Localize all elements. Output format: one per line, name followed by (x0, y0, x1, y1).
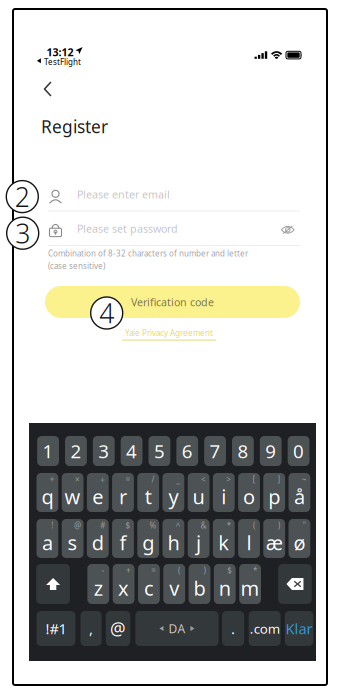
button[interactable]: 1 (37, 436, 59, 466)
staticText: 5 (154, 439, 165, 463)
button[interactable]: = (138, 564, 160, 604)
button[interactable]: / (137, 473, 159, 512)
button[interactable]: * (213, 519, 235, 558)
button[interactable]: & (188, 519, 209, 558)
staticText: ] (278, 474, 281, 485)
button[interactable]: 6 (176, 436, 198, 466)
button[interactable]: + (113, 564, 134, 604)
staticText: m (241, 575, 260, 601)
staticText: 3 (98, 439, 109, 463)
staticText: v (169, 575, 179, 601)
button[interactable]: ( (163, 564, 185, 604)
button[interactable]: 7 (204, 436, 226, 466)
button[interactable]: % (137, 519, 159, 558)
staticText: " (303, 520, 306, 531)
button[interactable]: Klar (285, 611, 313, 646)
button[interactable]: ^ (162, 519, 184, 558)
button[interactable]: × (62, 473, 83, 512)
button[interactable]: ) (189, 564, 210, 604)
button[interactable]: + (36, 473, 58, 512)
button[interactable]: [ (238, 473, 260, 512)
button[interactable]: Yale Privacy Agreement (113, 327, 225, 341)
button[interactable]: @ (106, 611, 130, 646)
staticText: 13:12 (46, 45, 73, 59)
staticText: o (243, 483, 255, 510)
staticText: x (118, 575, 129, 601)
staticText: # (100, 520, 105, 531)
button[interactable]: # (87, 519, 109, 558)
staticText: + (126, 565, 131, 576)
staticText: u (193, 483, 205, 510)
staticText: .com (250, 620, 280, 637)
staticText: s (68, 529, 78, 556)
staticText: ^ (176, 520, 181, 531)
button[interactable]: 4 (121, 436, 142, 466)
button[interactable]: Shift (36, 564, 70, 604)
button[interactable]: 3 (93, 436, 115, 466)
staticText: e (92, 483, 103, 510)
button[interactable]: Delete (278, 564, 312, 604)
staticText: å (294, 483, 305, 510)
button[interactable]: * (239, 564, 261, 604)
button[interactable]: . (222, 611, 244, 646)
staticText: t (145, 483, 152, 510)
button[interactable]: ( (238, 519, 260, 558)
button[interactable]: _ (162, 473, 184, 512)
button[interactable]: !#1 (37, 611, 75, 646)
staticText: Klar (286, 619, 313, 638)
button[interactable]: ÷ (87, 473, 109, 512)
staticText: % (150, 520, 157, 531)
staticText: Please enter email (77, 187, 170, 201)
staticText: b (193, 575, 205, 601)
staticText: ( (178, 565, 180, 576)
staticText: ) (203, 565, 205, 576)
staticText: Yale Privacy Agreement (125, 327, 213, 338)
button[interactable]: 8 (232, 436, 254, 466)
button[interactable]: ! (36, 519, 58, 558)
button[interactable]: 0 (288, 436, 309, 466)
button[interactable]: ~ (288, 473, 310, 512)
staticText: _ (176, 474, 180, 485)
button[interactable]: > (213, 473, 235, 512)
button[interactable]: < (188, 473, 209, 512)
button[interactable]: Space (135, 611, 219, 646)
button[interactable]: - (87, 564, 109, 604)
button[interactable]: $ (112, 519, 134, 558)
button[interactable]: ) (263, 519, 285, 558)
staticText: j (196, 529, 201, 556)
staticText: $ (227, 565, 232, 576)
staticText: (case sensitive) (48, 261, 105, 271)
staticText: n (219, 575, 231, 601)
button[interactable]: Back (30, 74, 66, 104)
staticText: 4 (126, 439, 137, 463)
button[interactable]: 9 (260, 436, 282, 466)
staticText: . (231, 619, 235, 638)
button[interactable]: @ (62, 519, 83, 558)
staticText: w (65, 483, 81, 510)
staticText: 3 (15, 215, 30, 251)
button[interactable]: " (288, 519, 310, 558)
staticText: 4 (99, 295, 114, 331)
button[interactable]: Show password (274, 217, 300, 241)
staticText: p (268, 483, 280, 510)
staticText: z (94, 575, 103, 601)
button[interactable]: , (80, 611, 102, 646)
staticText: × (75, 474, 80, 485)
staticText: * (227, 520, 231, 531)
staticText: DA (168, 620, 185, 636)
staticText: c (144, 575, 154, 601)
button[interactable]: Verification code (45, 286, 300, 318)
button[interactable]: 2 (65, 436, 87, 466)
button[interactable]: 5 (148, 436, 170, 466)
button[interactable]: $ (214, 564, 236, 604)
staticText: 2 (15, 179, 30, 214)
staticText: TestFlight (44, 56, 81, 67)
button[interactable]: .com (249, 611, 281, 646)
staticText: Verification code (131, 295, 214, 309)
staticText: > (226, 474, 231, 485)
button[interactable]: = (112, 473, 134, 512)
staticText: ø (293, 529, 305, 556)
button[interactable]: ] (263, 473, 285, 512)
staticText: k (218, 529, 229, 556)
staticText: 1 (43, 439, 54, 463)
